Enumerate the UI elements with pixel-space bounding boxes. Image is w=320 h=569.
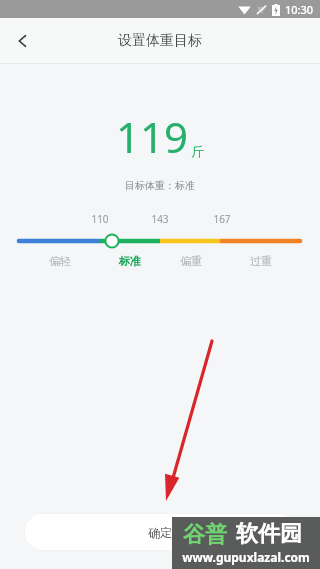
staticText: 设置体重目标	[118, 32, 202, 50]
staticText: 143	[151, 212, 169, 226]
staticText: www.gupuxlazal.com	[176, 549, 316, 565]
button[interactable]: 确定	[24, 513, 296, 551]
staticText: 确定	[148, 525, 172, 540]
staticText: 软件园	[236, 520, 302, 548]
staticText: 标准	[119, 254, 141, 268]
staticText: 谷普	[183, 521, 227, 547]
button[interactable]: Back	[0, 18, 46, 64]
staticText: 110	[91, 212, 109, 226]
staticText: 偏重	[180, 254, 202, 268]
staticText: 10:30	[285, 2, 314, 17]
staticText: 过重	[250, 254, 272, 268]
staticText: 目标体重：标准	[0, 179, 320, 192]
staticText: 167	[213, 212, 231, 226]
staticText: 斤	[191, 143, 204, 159]
staticText: 119	[116, 108, 189, 165]
staticText: 偏轻	[49, 254, 71, 268]
